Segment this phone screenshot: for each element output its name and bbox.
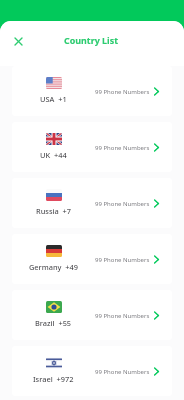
button[interactable]: Israel +972: [12, 346, 172, 396]
staticText: 99 Phone Numbers: [95, 312, 150, 320]
button[interactable]: UK +44: [12, 122, 172, 172]
staticText: USA +1: [40, 94, 67, 104]
button[interactable]: Brazil +55: [12, 290, 172, 340]
staticText: 99 Phone Numbers: [95, 144, 150, 152]
staticText: Israel +972: [33, 374, 74, 384]
staticText: 99 Phone Numbers: [95, 368, 150, 376]
staticText: 99 Phone Numbers: [95, 88, 150, 96]
staticText: Brazil +55: [35, 318, 72, 328]
staticText: 99 Phone Numbers: [95, 256, 150, 264]
button[interactable]: USA +1: [12, 66, 172, 116]
staticText: 99 Phone Numbers: [95, 200, 150, 208]
button[interactable]: Russia +7: [12, 178, 172, 228]
staticText: Russia +7: [36, 206, 72, 216]
staticText: UK +44: [40, 150, 67, 160]
button[interactable]: Germany +49: [12, 234, 172, 284]
staticText: Germany +49: [29, 262, 79, 272]
button[interactable]: Close: [8, 31, 28, 51]
staticText: Country List: [64, 34, 118, 46]
